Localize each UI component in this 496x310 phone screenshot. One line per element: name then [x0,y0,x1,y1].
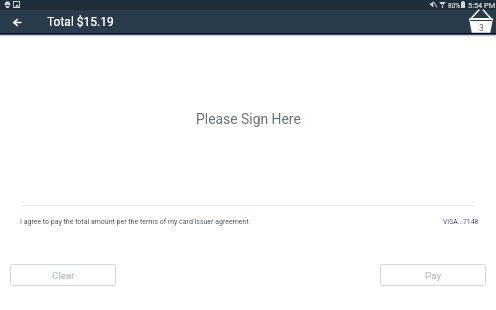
staticText: 5:54 PM [468,1,496,10]
button[interactable]: Back [7,12,27,32]
staticText: VISA...7148 [443,218,479,226]
button[interactable]: Shopping basket, 3 items [469,9,493,33]
staticText: 80% [448,2,461,10]
button[interactable]: Clear [10,264,116,286]
staticText: Please Sign Here [196,111,301,127]
staticText: I agree to pay the total amount per the … [20,218,249,226]
staticText: 3 [479,23,484,33]
button[interactable]: Pay [380,264,486,286]
staticText: Pay [425,270,442,281]
staticText: Total $15.19 [47,15,114,29]
staticText: Clear [52,270,75,281]
